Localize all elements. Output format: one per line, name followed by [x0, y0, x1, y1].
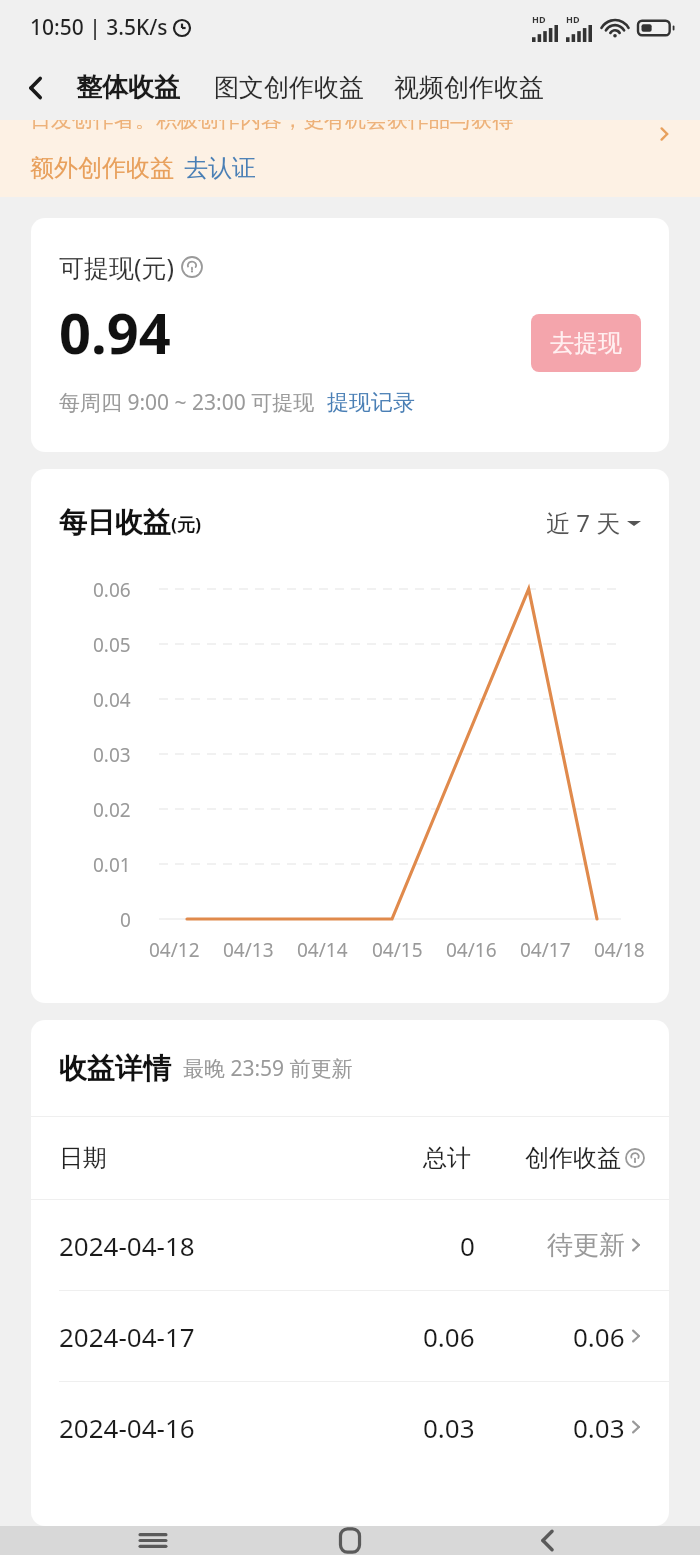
staticText: 视频创作收益	[394, 72, 544, 103]
staticText: 04/13	[223, 937, 274, 963]
staticText: 0.05	[93, 632, 131, 658]
staticText: 可提现(元)	[59, 250, 175, 284]
staticText: 0.06	[573, 1319, 625, 1354]
staticText: HD	[532, 13, 546, 25]
staticText: 0.01	[93, 852, 131, 878]
button[interactable]: 提现记录	[327, 389, 415, 417]
button[interactable]: 视频创作收益	[390, 72, 548, 103]
staticText: 04/15	[372, 937, 423, 963]
staticText: 04/12	[149, 937, 200, 963]
button[interactable]: 2024-04-17	[31, 1291, 669, 1381]
button[interactable]: 日发创作者。积极创作内容，更有机会获作品与获得	[0, 120, 700, 197]
staticText: 日期	[59, 1143, 107, 1173]
staticText: 2024-04-17	[59, 1319, 195, 1354]
staticText: 04/18	[594, 937, 645, 963]
staticText: 最晚 23:59 前更新	[183, 1054, 353, 1083]
staticText: 待更新	[547, 1229, 625, 1262]
staticText: 0	[460, 1228, 475, 1263]
staticText: 0.03	[93, 742, 131, 768]
button[interactable]: 图文创作收益	[210, 72, 368, 103]
button[interactable]: Help	[181, 256, 203, 278]
staticText: 额外创作收益	[30, 153, 174, 183]
staticText: 2024-04-18	[59, 1228, 195, 1263]
button[interactable]: 整体收益	[72, 71, 184, 104]
button[interactable]: Back	[0, 55, 72, 120]
staticText: 提现记录	[327, 389, 415, 417]
staticText: 0	[120, 907, 131, 933]
staticText: 0.03	[573, 1410, 625, 1445]
staticText: 10:50 | 3.5K/s	[30, 13, 168, 42]
staticText: 总计	[423, 1143, 471, 1173]
staticText: 04/14	[297, 937, 348, 963]
staticText: (元)	[171, 512, 202, 537]
staticText: 0.04	[93, 687, 131, 713]
staticText: 近 7 天	[546, 506, 621, 539]
staticText: 04/16	[446, 937, 497, 963]
staticText: 创作收益	[525, 1143, 621, 1173]
staticText: 2024-04-16	[59, 1410, 195, 1445]
button[interactable]: Recent apps	[108, 1526, 198, 1555]
staticText: HD	[566, 13, 580, 25]
button[interactable]: 近 7 天	[546, 506, 641, 539]
staticText: 0.94	[59, 294, 171, 370]
staticText: 04/17	[520, 937, 571, 963]
button[interactable]: 去提现	[531, 314, 641, 372]
button[interactable]: 2024-04-16	[31, 1382, 669, 1472]
staticText: 整体收益	[76, 71, 180, 104]
staticText: 图文创作收益	[214, 72, 364, 103]
staticText: 0.02	[93, 797, 131, 823]
staticText: 去认证	[184, 153, 256, 183]
button[interactable]: Help	[625, 1148, 645, 1168]
staticText: 0.06	[423, 1319, 475, 1354]
button[interactable]: Home	[305, 1526, 395, 1555]
staticText: 日发创作者。积极创作内容，更有机会获作品与获得	[30, 120, 513, 131]
staticText: 0.06	[93, 577, 131, 603]
staticText: 每日收益	[59, 505, 171, 540]
staticText: 收益详情	[59, 1051, 171, 1086]
button[interactable]: Back	[503, 1526, 593, 1555]
staticText: 0.03	[423, 1410, 475, 1445]
button[interactable]: 2024-04-18	[31, 1200, 669, 1290]
staticText: 每周四 9:00 ~ 23:00 可提现	[59, 388, 315, 417]
staticText: 去提现	[550, 328, 622, 358]
